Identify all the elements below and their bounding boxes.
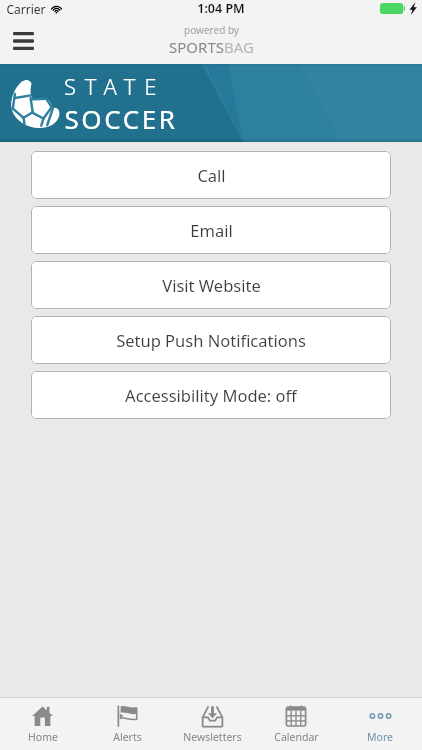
staticText: More — [367, 730, 393, 744]
button[interactable]: More — [338, 698, 422, 750]
staticText: BAG — [224, 37, 254, 57]
staticText: SPORTS — [169, 37, 224, 57]
button[interactable]: Call — [31, 151, 391, 199]
staticText: Alerts — [113, 730, 142, 744]
button[interactable]: Email — [31, 206, 391, 254]
staticText: Newsletters — [183, 730, 242, 744]
staticText: STATE — [64, 71, 165, 101]
button[interactable]: Alerts — [85, 698, 170, 750]
button[interactable]: Menu — [4, 22, 42, 60]
staticText: Visit Website — [162, 274, 261, 296]
staticText: 1:04 PM — [197, 0, 245, 17]
staticText: powered by — [184, 23, 239, 37]
button[interactable]: Home — [0, 698, 85, 750]
staticText: SOCCER — [64, 101, 178, 136]
button[interactable]: Newsletters — [170, 698, 254, 750]
button[interactable]: Visit Website — [31, 261, 391, 309]
staticText: Calendar — [274, 730, 319, 744]
button[interactable]: Setup Push Notifications — [31, 316, 391, 364]
button[interactable]: Accessibility Mode: off — [31, 371, 391, 419]
button[interactable]: Calendar — [254, 698, 338, 750]
staticText: Email — [190, 219, 233, 241]
staticText: Carrier — [6, 1, 46, 17]
staticText: Accessibility Mode: off — [125, 384, 297, 406]
staticText: Setup Push Notifications — [116, 329, 306, 351]
staticText: Call — [197, 164, 226, 186]
staticText: Home — [28, 730, 58, 744]
